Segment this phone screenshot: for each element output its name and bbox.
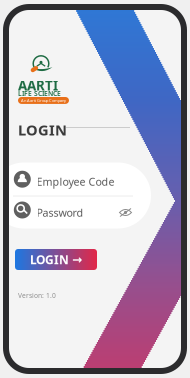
staticText: Employee Code [36, 174, 114, 189]
staticText: LIFE SCIENCE [18, 89, 61, 98]
button[interactable]: LOGIN [15, 249, 97, 270]
staticText: Version: 1.0 [18, 291, 56, 300]
staticText: → [72, 253, 82, 266]
staticText: LOGIN [18, 120, 67, 139]
staticText: LOGIN [30, 251, 69, 267]
staticText: An Aarti Group Company [21, 98, 66, 103]
staticText: Password [36, 205, 83, 220]
staticText: AARTI [18, 76, 58, 94]
